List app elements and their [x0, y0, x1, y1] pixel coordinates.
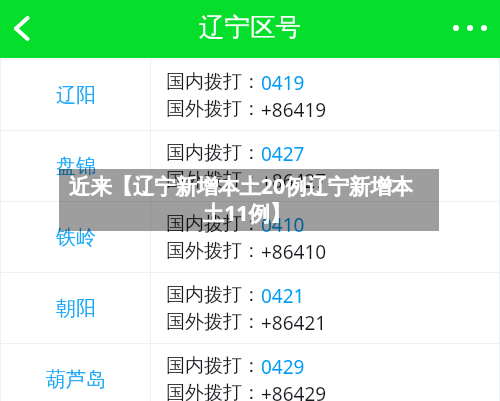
staticText: +86427	[261, 168, 327, 194]
staticText: 0410	[261, 212, 305, 238]
staticText: 土11例】	[72, 198, 422, 227]
staticText: +86410	[261, 239, 327, 265]
staticText: 盘锦	[56, 154, 96, 179]
staticText: 国外拨打：	[166, 381, 261, 401]
button[interactable]: 朝阳	[0, 273, 500, 344]
staticText: 0419	[261, 70, 305, 96]
staticText: 国外拨打：	[166, 168, 261, 192]
staticText: 国内拨打：	[166, 141, 261, 165]
staticText: 朝阳	[56, 296, 96, 321]
button[interactable]: Back	[0, 0, 44, 58]
staticText: 葫芦岛	[46, 367, 106, 392]
staticText: 近来【辽宁新增本土20例辽宁新增本	[66, 171, 416, 200]
staticText: 0421	[261, 283, 305, 309]
staticText: 国外拨打：	[166, 310, 261, 334]
staticText: +86429	[261, 381, 327, 401]
staticText: 国外拨打：	[166, 239, 261, 263]
staticText: 辽宁区号	[199, 11, 301, 43]
button[interactable]: 辽阳	[0, 60, 500, 131]
staticText: 国内拨打：	[166, 70, 261, 94]
button[interactable]: 葫芦岛	[0, 344, 500, 401]
staticText: 国外拨打：	[166, 97, 261, 121]
button[interactable]: 盘锦	[0, 131, 500, 202]
staticText: 辽阳	[56, 83, 96, 108]
button[interactable]: 铁岭	[0, 202, 500, 273]
button[interactable]: More options	[440, 0, 500, 57]
staticText: 国内拨打：	[166, 283, 261, 307]
staticText: 0429	[261, 354, 305, 380]
staticText: +86421	[261, 310, 327, 336]
staticText: 铁岭	[56, 225, 96, 250]
staticText: 国内拨打：	[166, 212, 261, 236]
staticText: 国内拨打：	[166, 354, 261, 378]
staticText: 0427	[261, 141, 305, 167]
staticText: +86419	[261, 97, 327, 123]
